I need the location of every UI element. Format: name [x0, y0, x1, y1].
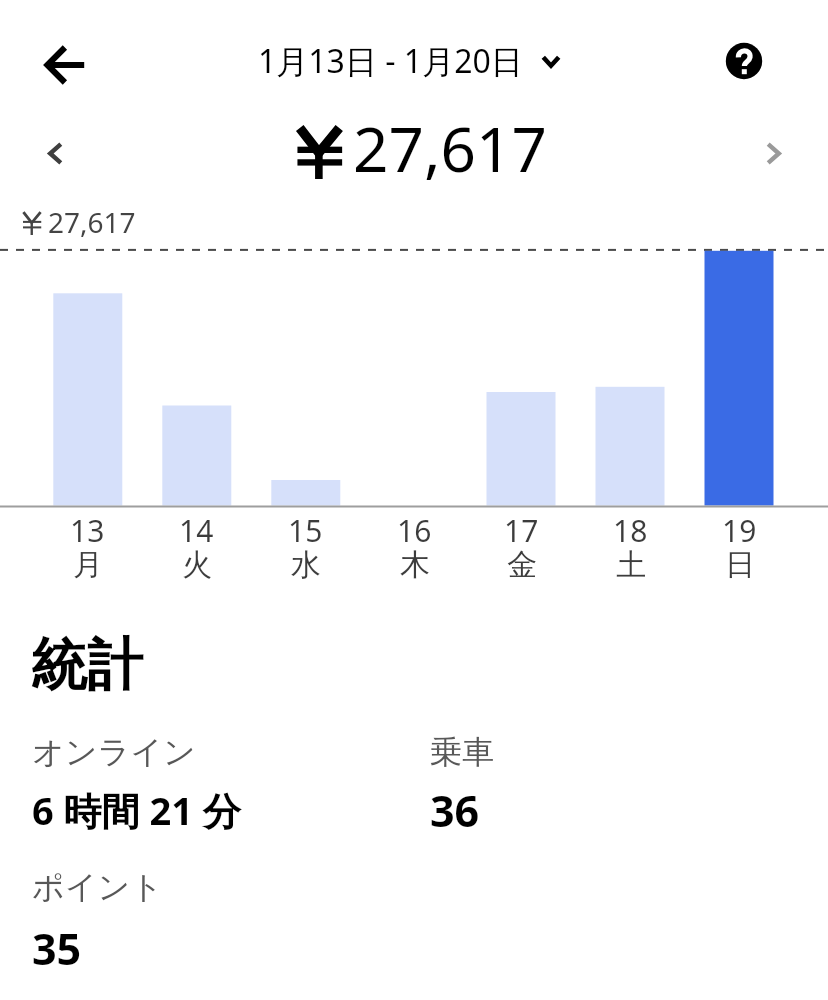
staticText: 27,617: [48, 203, 136, 241]
staticText: 27,617: [353, 106, 547, 188]
button[interactable]: 15日 水曜日: [255, 250, 356, 590]
button[interactable]: 14日 火曜日: [146, 250, 247, 590]
staticText: 日: [725, 546, 755, 584]
staticText: 16: [397, 510, 432, 551]
staticText: オンライン: [32, 732, 196, 772]
staticText: 13: [70, 510, 105, 551]
staticText: 35: [32, 919, 82, 978]
staticText: 木: [400, 546, 430, 584]
button[interactable]: 1月13日 - 1月20日: [248, 30, 571, 92]
staticText: 火: [182, 546, 212, 584]
button[interactable]: Help: [708, 25, 780, 97]
staticText: 月: [73, 546, 103, 584]
button[interactable]: Next week: [741, 119, 805, 183]
staticText: 1月13日 - 1月20日: [258, 39, 523, 83]
button[interactable]: 19日 日曜日: [689, 250, 790, 590]
staticText: 18: [613, 510, 648, 551]
staticText: 19: [722, 510, 757, 551]
staticText: 17: [504, 510, 539, 551]
button[interactable]: 13日 月曜日: [37, 250, 138, 590]
staticText: 15: [288, 510, 323, 551]
button[interactable]: 17日 金曜日: [471, 250, 572, 590]
staticText: 金: [507, 546, 537, 584]
staticText: 36: [430, 781, 480, 840]
button[interactable]: 18日 土曜日: [580, 250, 681, 590]
staticText: 統計: [31, 630, 143, 701]
staticText: ポイント: [32, 867, 163, 907]
staticText: 土: [616, 546, 646, 584]
button[interactable]: Back: [28, 25, 108, 105]
staticText: 水: [291, 546, 321, 584]
button[interactable]: Previous week: [23, 119, 87, 183]
staticText: 乗車: [430, 732, 494, 772]
button[interactable]: 16日 木曜日: [364, 250, 465, 590]
staticText: 6 時間 21 分: [32, 784, 241, 836]
staticText: 14: [179, 510, 214, 551]
